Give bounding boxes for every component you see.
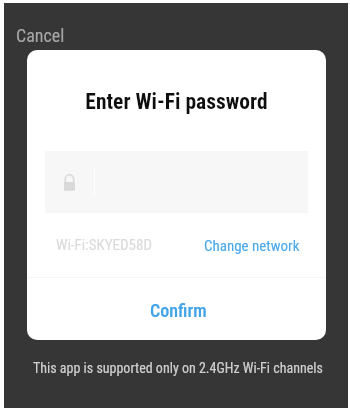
staticText: Change network xyxy=(204,237,300,255)
button[interactable]: Change network xyxy=(200,234,304,258)
staticText: Enter Wi-Fi password xyxy=(27,89,326,114)
staticText: Confirm xyxy=(150,300,207,321)
button[interactable]: Cancel xyxy=(12,22,69,49)
staticText: Wi-Fi:SKYED58D xyxy=(56,236,152,254)
button[interactable]: Confirm xyxy=(29,280,326,340)
other: Password field xyxy=(64,173,75,191)
staticText: Cancel xyxy=(16,25,65,46)
staticText: This app is supported only on 2.4GHz Wi-… xyxy=(33,360,323,376)
